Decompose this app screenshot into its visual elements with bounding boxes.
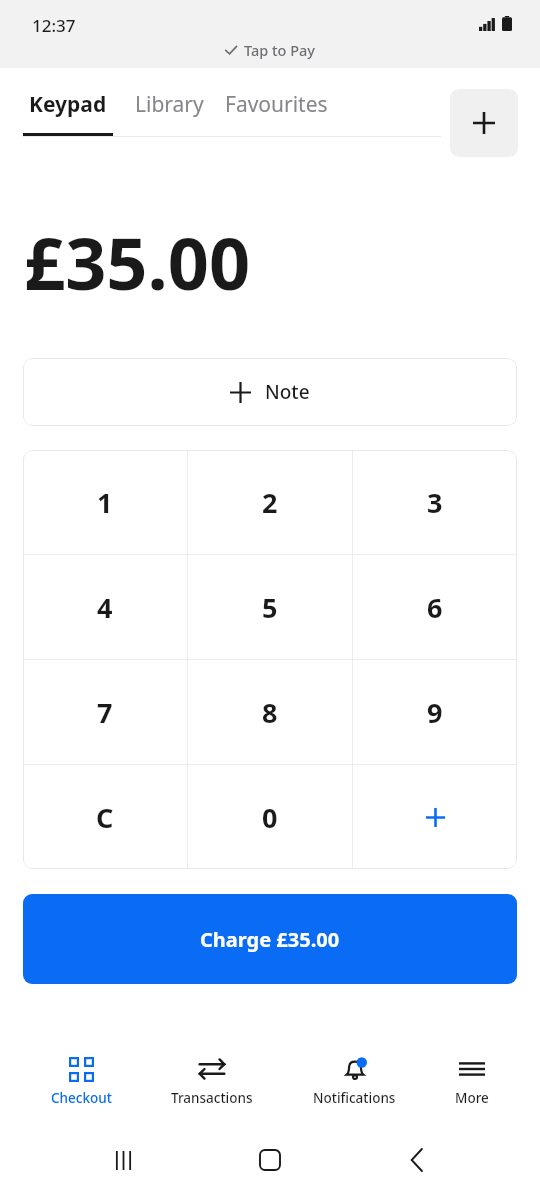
staticText: 5 <box>262 589 278 626</box>
staticText: Keypad <box>29 90 107 119</box>
button[interactable]: Home <box>246 1136 294 1184</box>
staticText: 4 <box>97 589 113 626</box>
staticText: Favourites <box>225 90 328 119</box>
staticText: 0 <box>262 799 278 836</box>
staticText: Notifications <box>313 1089 396 1107</box>
button[interactable]: 2 <box>188 450 352 554</box>
staticText: 7 <box>97 694 113 731</box>
button[interactable]: More <box>447 1049 497 1113</box>
button[interactable]: Transactions <box>163 1049 261 1113</box>
button[interactable]: 1 <box>23 450 187 554</box>
button[interactable]: Charge £35.00 <box>23 894 517 984</box>
staticText: 12:37 <box>32 14 76 37</box>
staticText: 6 <box>427 589 443 626</box>
staticText: 3 <box>427 484 443 521</box>
button[interactable]: 7 <box>23 660 187 764</box>
staticText: Transactions <box>171 1089 253 1107</box>
button[interactable]: 3 <box>353 450 517 554</box>
staticText: 2 <box>262 484 278 521</box>
button[interactable]: 9 <box>353 660 517 764</box>
button[interactable]: Favourites <box>225 90 328 119</box>
staticText: Charge £35.00 <box>200 926 340 953</box>
staticText: Note <box>265 379 310 405</box>
button[interactable]: Recents <box>99 1136 147 1184</box>
button[interactable]: Notifications <box>305 1049 404 1113</box>
staticText: C <box>96 799 114 836</box>
button[interactable]: Add <box>450 89 518 157</box>
button[interactable]: 6 <box>353 555 517 659</box>
staticText: £35.00 <box>24 213 251 311</box>
staticText: 1 <box>97 484 113 521</box>
button[interactable]: 5 <box>188 555 352 659</box>
button[interactable]: 4 <box>23 555 187 659</box>
button[interactable] <box>353 765 517 869</box>
staticText: More <box>455 1089 489 1107</box>
button[interactable]: Back <box>393 1136 441 1184</box>
button[interactable]: Keypad <box>23 90 113 136</box>
button[interactable]: Library <box>135 90 204 119</box>
button[interactable]: Checkout <box>43 1049 120 1113</box>
button[interactable]: 0 <box>188 765 352 869</box>
staticText: Tap to Pay <box>244 40 316 60</box>
staticText: Checkout <box>51 1089 112 1107</box>
staticText: 9 <box>427 694 443 731</box>
button[interactable]: Note <box>23 358 517 426</box>
staticText: Library <box>135 90 204 119</box>
button[interactable]: C <box>23 765 187 869</box>
button[interactable]: 8 <box>188 660 352 764</box>
staticText: 8 <box>262 694 278 731</box>
